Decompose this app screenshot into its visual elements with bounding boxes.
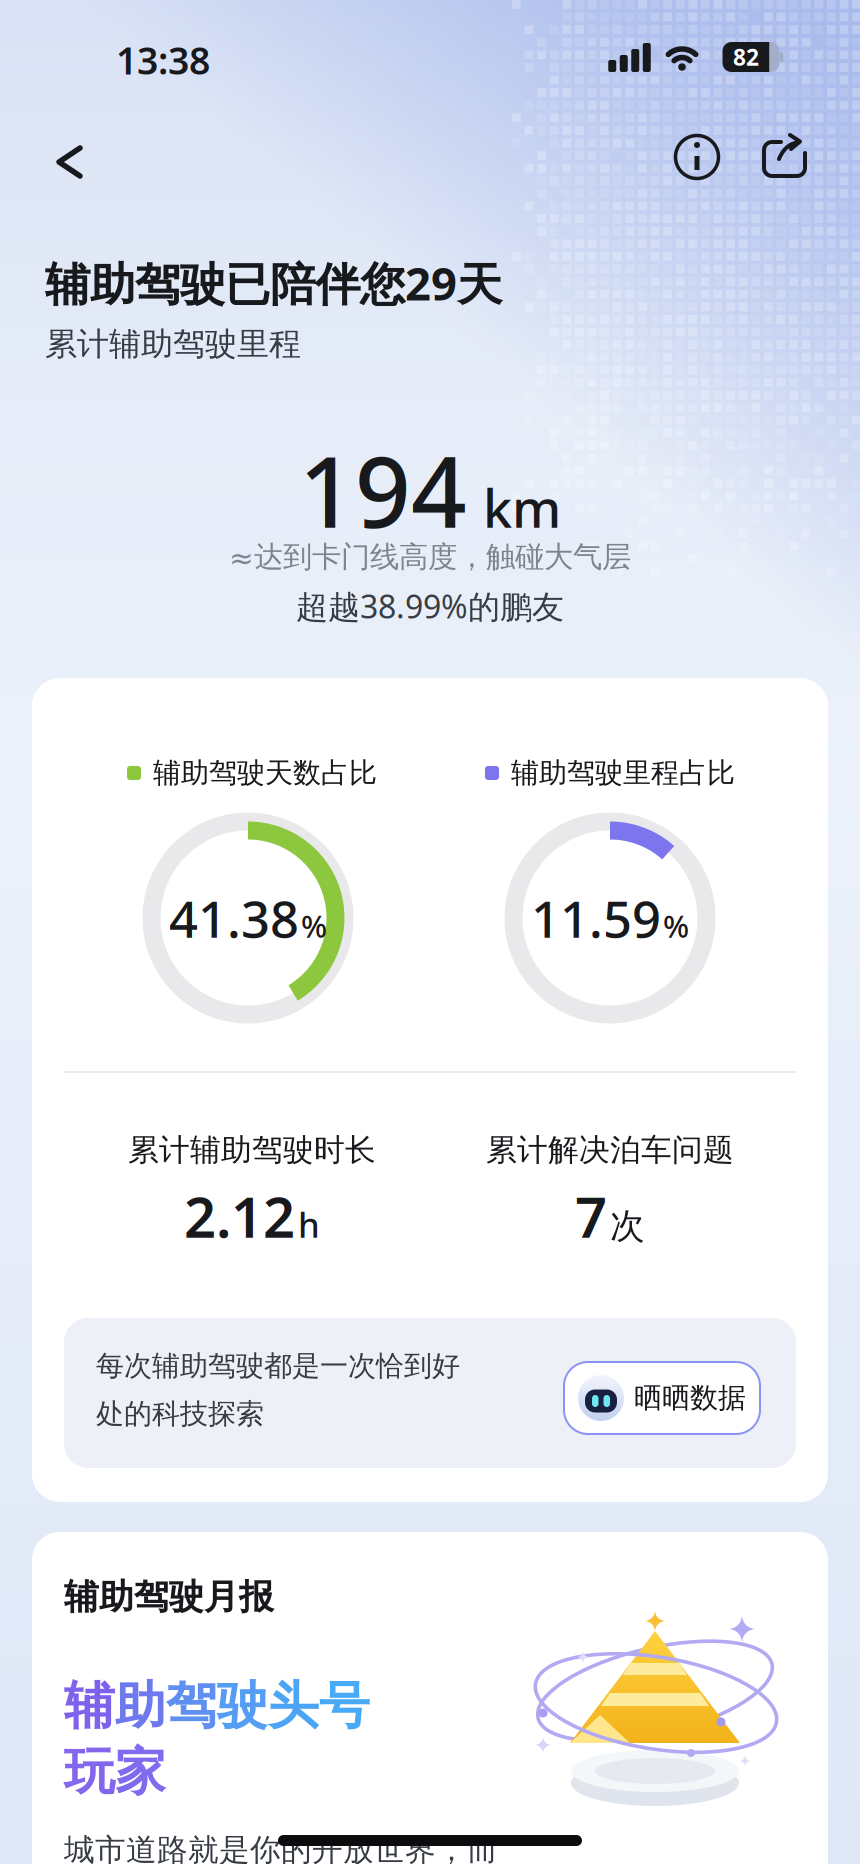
staticText: 家: [115, 1741, 166, 1803]
button[interactable]: 晒晒数据: [564, 1362, 760, 1434]
staticText: 累计辅助驾驶里程: [45, 324, 301, 364]
staticText: 头: [268, 1675, 319, 1737]
staticText: 辅助驾驶月报: [64, 1576, 274, 1618]
staticText: 7: [575, 1179, 607, 1253]
staticText: 处的科技探索: [96, 1397, 264, 1431]
staticText: 11.59: [531, 884, 661, 952]
staticText: 辅助驾驶里程占比: [511, 756, 735, 790]
staticText: 累计解决泊车问题: [486, 1131, 734, 1169]
staticText: 41.38: [169, 884, 299, 952]
staticText: 累计辅助驾驶时长: [128, 1131, 376, 1169]
staticText: 驶: [217, 1675, 268, 1737]
staticText: km: [483, 473, 561, 542]
staticText: 玩: [64, 1741, 115, 1803]
staticText: 82: [733, 42, 759, 72]
staticText: 次: [610, 1205, 645, 1247]
staticText: 助: [115, 1675, 166, 1737]
staticText: 辅: [64, 1675, 115, 1737]
staticText: %: [301, 905, 327, 946]
staticText: 辅助驾驶已陪伴您29天: [45, 253, 502, 313]
staticText: 驾: [166, 1675, 217, 1737]
staticText: %: [663, 905, 689, 946]
staticText: 晒晒数据: [634, 1381, 746, 1415]
button[interactable]: [674, 134, 720, 180]
staticText: 超越38.99%的鹏友: [296, 585, 564, 627]
staticText: 13:38: [116, 35, 210, 85]
button[interactable]: [762, 132, 808, 178]
staticText: 号: [319, 1675, 370, 1737]
staticText: 城市道路就是你的开放世界，而: [64, 1831, 498, 1864]
staticText: 辅助驾驶天数占比: [153, 756, 377, 790]
staticText: 2.12: [184, 1179, 295, 1253]
staticText: ≈达到卡门线高度，触碰大气层: [229, 539, 631, 575]
button[interactable]: [48, 140, 92, 184]
staticText: 194: [299, 425, 467, 555]
staticText: 每次辅助驾驶都是一次恰到好: [96, 1349, 460, 1383]
staticText: h: [298, 1201, 320, 1247]
